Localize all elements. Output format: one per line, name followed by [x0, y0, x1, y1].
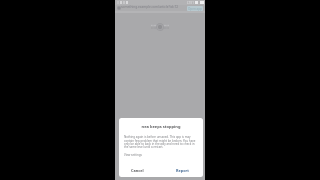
staticText: LTE1	[187, 1, 194, 5]
staticText: Cancel	[131, 168, 144, 173]
staticText: Nothing again is before unsaved. This ap…	[124, 135, 196, 148]
button[interactable]: Page info	[117, 6, 120, 9]
button[interactable]: Open app	[187, 6, 203, 11]
staticText: Open app	[188, 7, 202, 11]
button[interactable]: Cancel	[131, 168, 144, 173]
staticText: something.example.com/article?id=72	[121, 5, 179, 9]
button[interactable]: View settings	[124, 153, 142, 157]
staticText: View settings	[124, 153, 142, 157]
button[interactable]: Report	[176, 168, 189, 173]
staticText: Report	[176, 168, 189, 173]
staticText: nea keeps stopping	[119, 124, 203, 129]
